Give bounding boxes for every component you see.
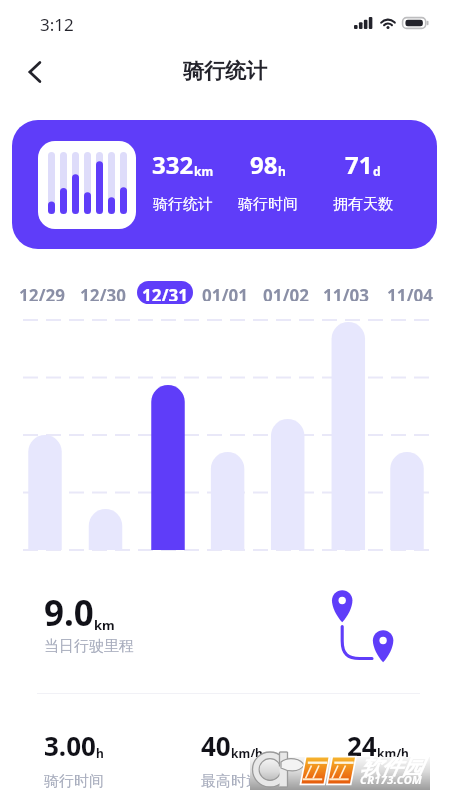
staticText: 01/02 xyxy=(263,284,309,301)
staticText: 24 xyxy=(347,728,377,763)
staticText: h xyxy=(96,745,104,761)
button[interactable]: 332 xyxy=(12,120,437,249)
staticText: km xyxy=(194,163,214,179)
staticText: 11/03 xyxy=(323,284,369,301)
staticText: 40 xyxy=(201,728,231,763)
staticText: 3:12 xyxy=(40,13,74,36)
staticText: 11/04 xyxy=(387,284,433,301)
staticText: km/h xyxy=(377,745,409,761)
staticText: 软件园 xyxy=(360,754,423,780)
staticText: d xyxy=(373,163,381,179)
staticText: 骑行统计 xyxy=(153,195,213,214)
staticText: 3.00 xyxy=(44,728,96,763)
staticText: 12/29 xyxy=(19,284,65,301)
staticText: 骑行统计 xyxy=(183,58,267,84)
staticText: 98 xyxy=(250,148,278,181)
button[interactable]: 01/01 xyxy=(190,281,260,304)
staticText: 拥有天数 xyxy=(333,195,393,214)
staticText: 12/30 xyxy=(80,284,126,301)
button[interactable]: 12/30 xyxy=(68,281,138,304)
staticText: 12/31 xyxy=(142,284,188,301)
staticText: 332 xyxy=(152,148,194,181)
staticText: CR173.COM xyxy=(360,772,423,787)
staticText: 骑行时间 xyxy=(238,195,298,214)
staticText: 平均时速 xyxy=(347,772,407,791)
staticText: km/h xyxy=(231,745,263,761)
staticText: 01/01 xyxy=(202,284,248,301)
staticText: km xyxy=(94,616,115,634)
button[interactable]: 01/02 xyxy=(251,281,321,304)
staticText: 骑行时间 xyxy=(44,772,104,791)
button[interactable]: 11/03 xyxy=(311,281,381,304)
staticText: 9.0 xyxy=(44,589,94,637)
button[interactable]: 12/31 xyxy=(130,281,200,304)
staticText: h xyxy=(278,163,286,179)
button[interactable]: 12/29 xyxy=(7,281,77,304)
staticText: 当日行驶里程 xyxy=(44,637,134,656)
button[interactable]: Back xyxy=(13,50,57,94)
staticText: 71 xyxy=(345,148,373,181)
button[interactable]: 11/04 xyxy=(375,281,445,304)
staticText: 最高时速 xyxy=(201,772,261,791)
